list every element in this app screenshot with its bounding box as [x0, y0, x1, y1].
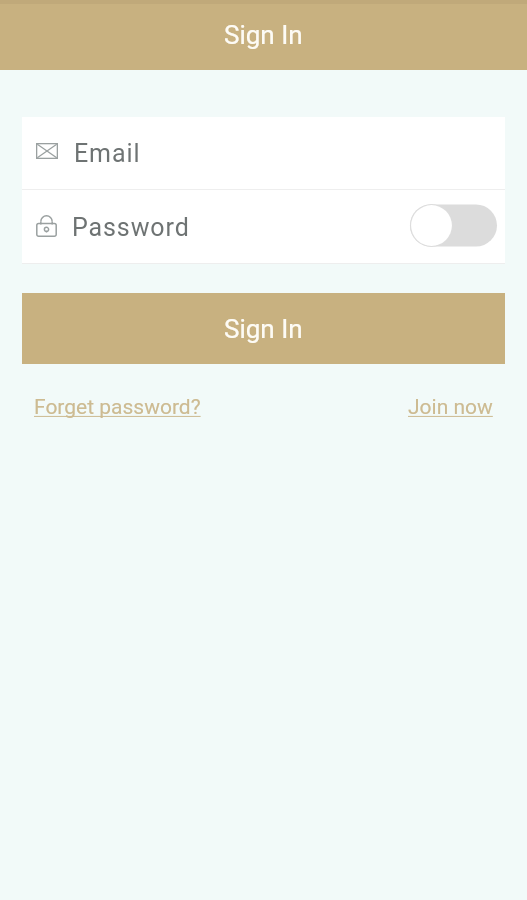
- button[interactable]: Sign In: [22, 293, 505, 364]
- button[interactable]: Join now: [396, 393, 505, 422]
- button[interactable]: Email: [22, 117, 505, 189]
- staticText: Sign In: [224, 314, 303, 344]
- staticText: Password: [72, 213, 190, 242]
- staticText: Join now: [408, 395, 493, 420]
- button[interactable]: Forget password?: [22, 393, 213, 422]
- button[interactable]: Password: [22, 190, 505, 263]
- staticText: Email: [74, 139, 141, 168]
- staticText: Sign In: [224, 20, 303, 50]
- button[interactable]: Show password: [410, 204, 497, 247]
- staticText: Forget password?: [34, 395, 201, 420]
